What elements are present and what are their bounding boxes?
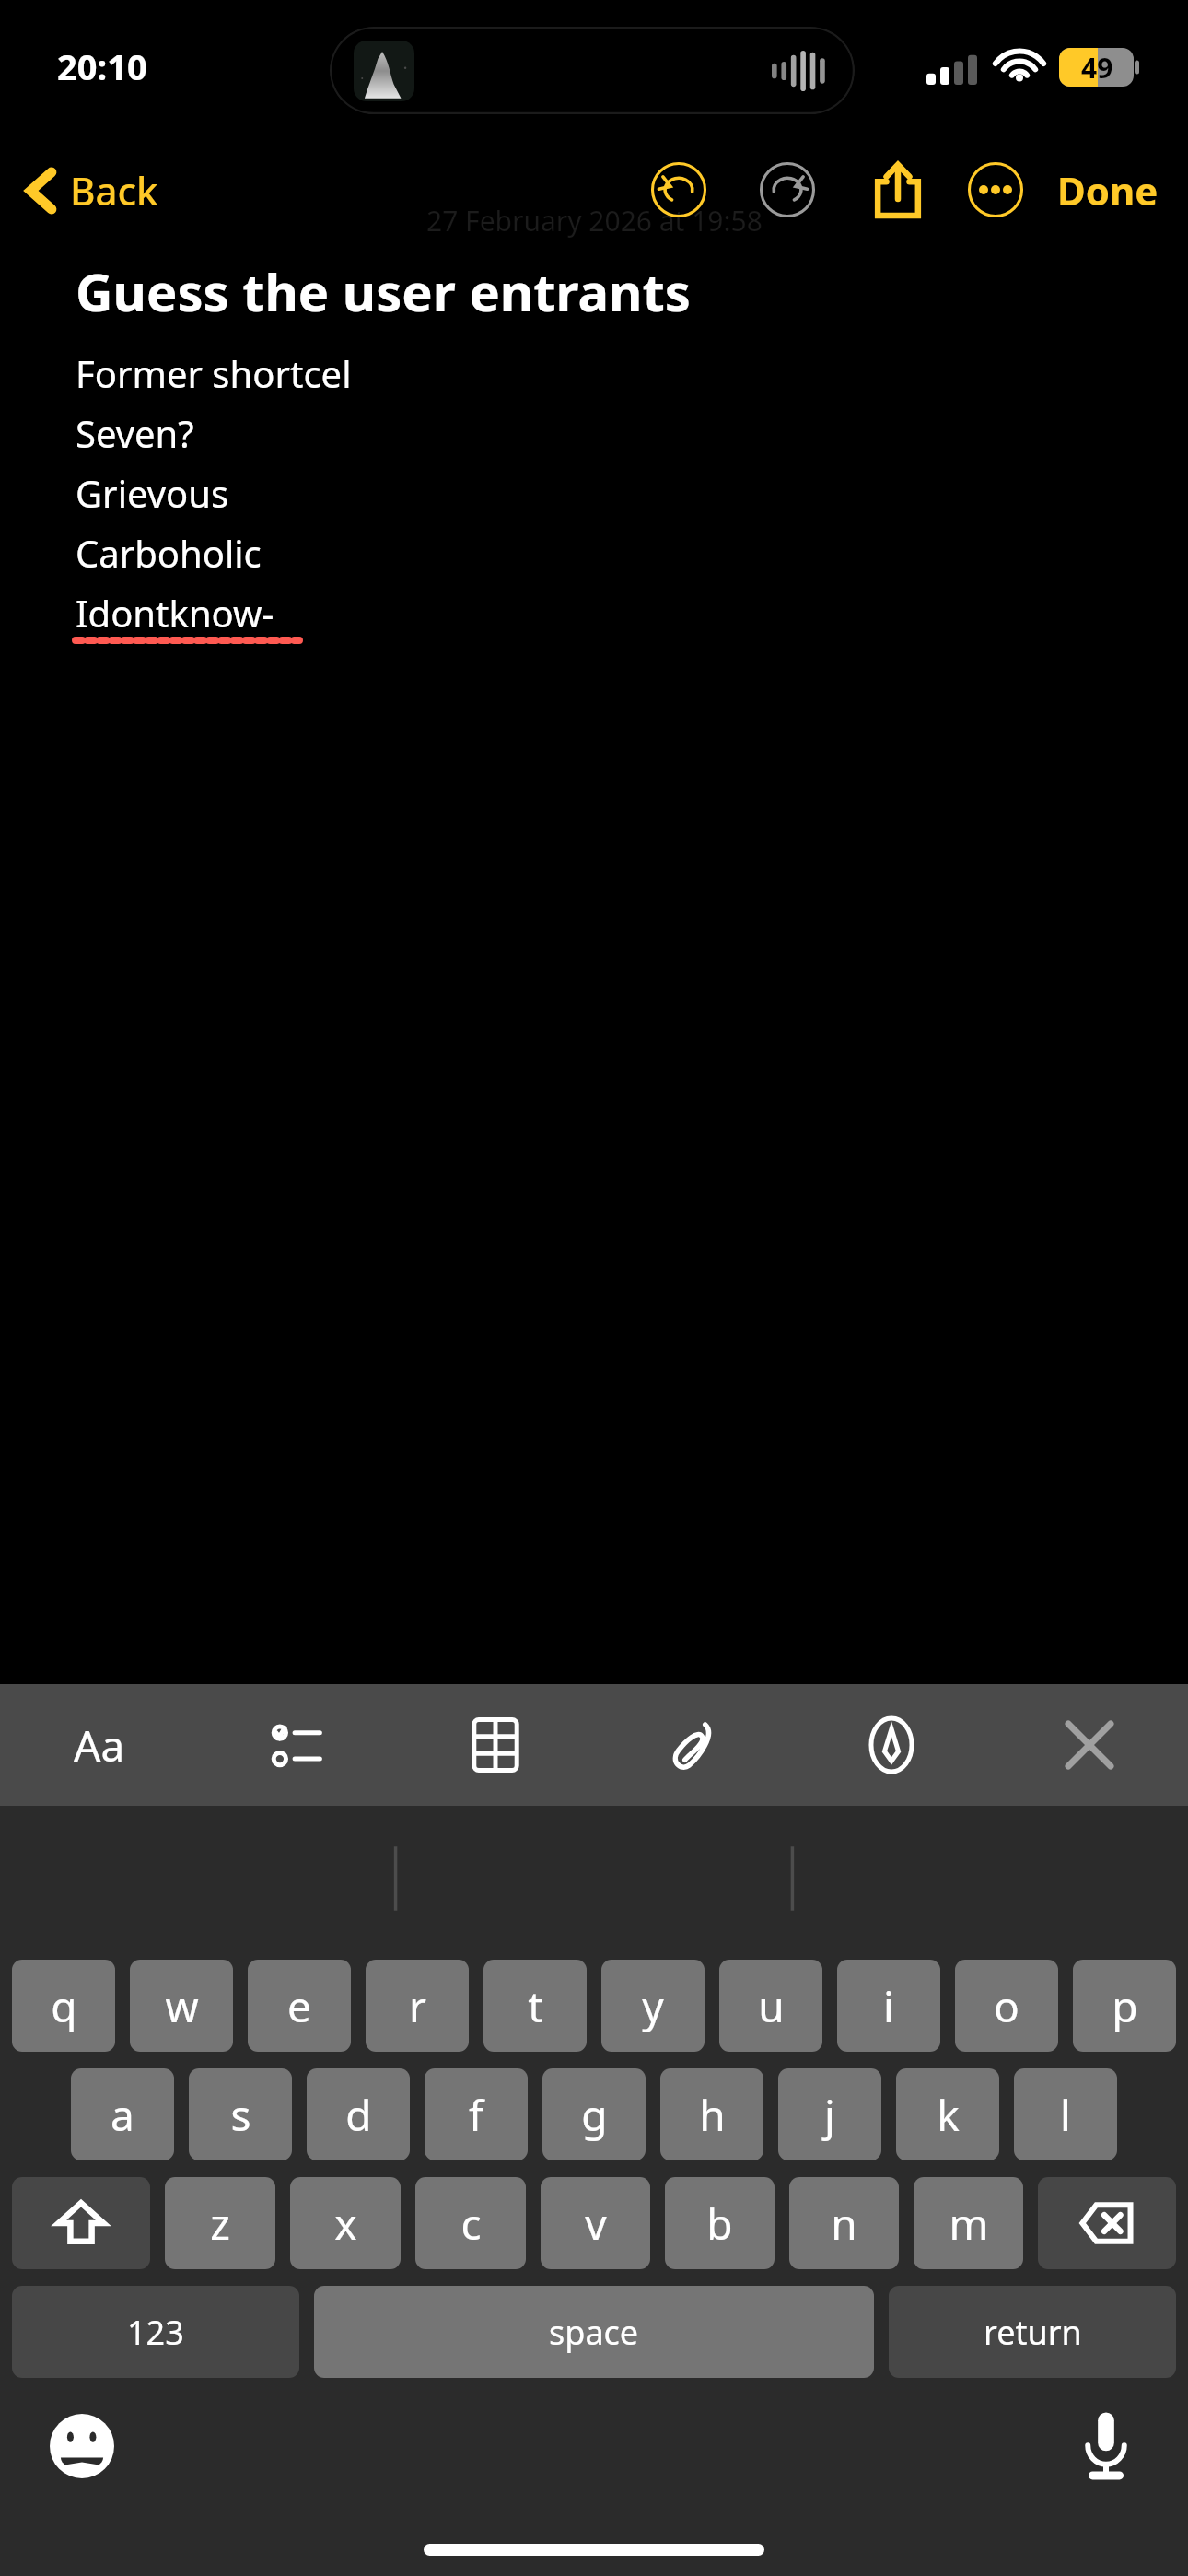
staticText: Carboholic [76,528,262,578]
button[interactable]: r [366,1960,469,2052]
staticText: u [758,1977,785,2035]
button[interactable]: i [837,1960,940,2052]
staticText: c [460,2195,482,2253]
staticText: g [581,2086,608,2144]
button[interactable]: Markup [792,1684,990,1806]
staticText: e [287,1977,311,2035]
staticText: k [937,2086,960,2144]
button[interactable]: f [425,2068,528,2160]
button[interactable]: return [889,2286,1176,2378]
staticText: Former shortcel [76,348,352,398]
staticText: Grievous [76,468,229,518]
staticText: 49 [1081,49,1113,87]
button[interactable]: o [955,1960,1058,2052]
staticText: w [165,1977,199,2035]
staticText: s [230,2086,251,2144]
button[interactable]: Done [1052,164,1164,217]
staticText: Back [70,164,158,217]
button[interactable]: a [71,2068,174,2160]
staticText: p [1112,1977,1138,2035]
button[interactable]: y [601,1960,705,2052]
staticText: Idontknow- [76,588,274,638]
button[interactable]: Attach [594,1684,792,1806]
button[interactable]: c [415,2177,526,2269]
staticText: d [345,2086,372,2144]
button[interactable]: Back [26,164,158,217]
button[interactable]: Close keyboard [990,1684,1188,1806]
button[interactable]: s [189,2068,292,2160]
button[interactable]: j [778,2068,881,2160]
staticText: z [210,2195,230,2253]
button[interactable]: Share [862,154,934,226]
staticText: Guess the user entrants [76,256,691,326]
staticText: o [994,1977,1019,2035]
staticText: h [699,2086,726,2144]
staticText: a [111,2086,134,2144]
staticText: j [824,2086,835,2144]
button[interactable]: Shift [12,2177,150,2269]
staticText: 27 February 2026 at 19:58 [426,202,763,240]
staticText: n [831,2195,857,2253]
button[interactable]: b [665,2177,775,2269]
button[interactable]: 123 [12,2286,299,2378]
button[interactable]: Dictate [1066,2406,1146,2486]
staticText: y [642,1977,664,2035]
staticText: Aa [74,1716,125,1774]
staticText: Done [1057,164,1159,217]
button[interactable]: t [483,1960,587,2052]
button[interactable]: space [314,2286,874,2378]
button[interactable]: m [914,2177,1023,2269]
button[interactable]: w [130,1960,233,2052]
button[interactable]: Delete [1038,2177,1176,2269]
staticText: t [528,1977,543,2035]
staticText: b [706,2195,733,2253]
button[interactable]: Format [0,1684,198,1806]
staticText: space [549,2310,639,2355]
button[interactable]: h [660,2068,763,2160]
staticText: m [949,2195,989,2253]
staticText: l [1060,2086,1071,2144]
button[interactable]: k [896,2068,999,2160]
button[interactable]: More [961,156,1030,224]
button[interactable]: u [719,1960,822,2052]
staticText: q [51,1977,77,2035]
staticText: 20:10 [57,42,147,90]
button[interactable]: l [1014,2068,1117,2160]
staticText: Seven? [76,408,194,458]
button[interactable]: x [290,2177,401,2269]
staticText: x [334,2195,357,2253]
staticText: 123 [127,2310,184,2355]
button[interactable]: v [541,2177,650,2269]
button[interactable]: Emoji [42,2406,122,2486]
button[interactable]: q [12,1960,115,2052]
button[interactable]: Undo [645,156,713,224]
staticText: return [984,2310,1082,2355]
button[interactable]: d [307,2068,410,2160]
button[interactable]: Table [396,1684,594,1806]
button[interactable]: n [789,2177,899,2269]
button[interactable]: e [248,1960,351,2052]
button[interactable]: Checklist [198,1684,396,1806]
staticText: v [585,2195,607,2253]
button[interactable]: z [165,2177,275,2269]
button[interactable]: g [542,2068,646,2160]
button[interactable]: p [1073,1960,1176,2052]
staticText: r [409,1977,426,2035]
button[interactable]: Redo [753,156,821,224]
staticText: i [883,1977,894,2035]
staticText: f [469,2086,483,2144]
